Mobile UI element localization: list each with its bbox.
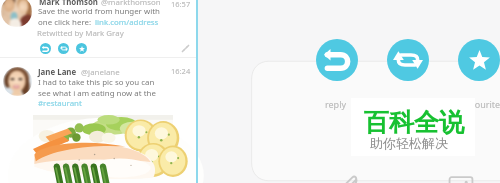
staticText: 百科全说 — [364, 107, 464, 138]
staticText: Jane Lane — [38, 67, 77, 78]
button[interactable]: Favourite — [458, 39, 500, 81]
staticText: 16:24 — [171, 66, 191, 76]
staticText: @janelane — [81, 67, 120, 78]
staticText: retweet — [391, 98, 424, 110]
button[interactable]: Link — [180, 43, 191, 54]
staticText: favourite — [462, 98, 500, 110]
staticText: I had to take this pic so you can — [38, 77, 155, 88]
staticText: Mark Thomson — [39, 0, 98, 8]
button[interactable]: Attach — [341, 172, 360, 183]
button[interactable]: Reply — [316, 39, 358, 81]
staticText: see what i am eating now at the — [38, 88, 156, 99]
button[interactable]: Retweet — [387, 39, 429, 81]
staticText: @markthomson — [101, 0, 161, 8]
staticText: #restaurant — [38, 98, 82, 109]
staticText: Retwitted by Mark Gray — [37, 28, 124, 39]
button[interactable]: Photo — [448, 173, 474, 183]
staticText: 助你轻松解决 — [370, 135, 448, 151]
staticText: reply — [325, 98, 347, 110]
staticText: Save the world from hunger with — [38, 6, 160, 17]
staticText: one click here: — [38, 17, 92, 28]
staticText: 16:57 — [171, 0, 191, 9]
staticText: link.com/address — [95, 17, 159, 28]
button[interactable]: Reply — [40, 43, 51, 54]
button[interactable]: Retweet — [58, 43, 69, 54]
button[interactable]: Favourite — [76, 43, 87, 54]
